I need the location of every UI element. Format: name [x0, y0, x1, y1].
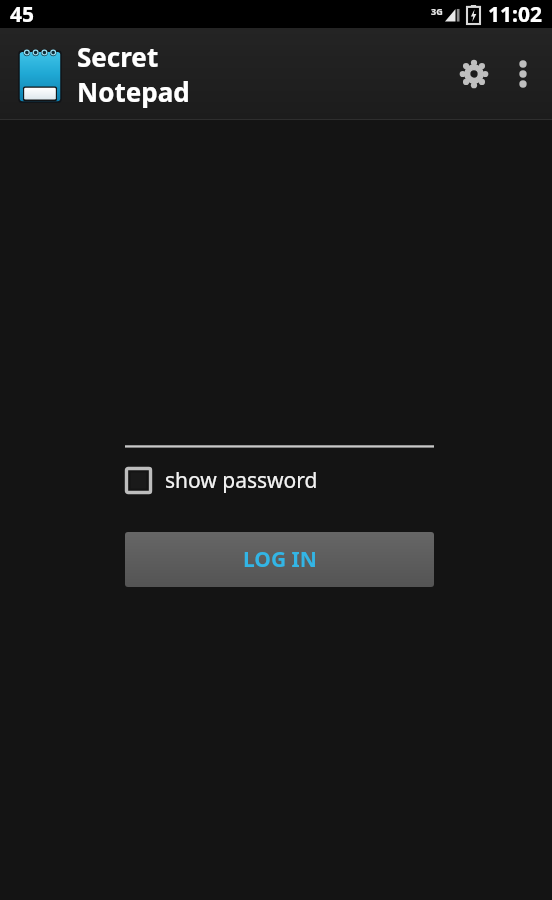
staticText: 45	[10, 0, 35, 28]
staticText: 3G	[431, 5, 443, 17]
staticText: LOG IN	[243, 545, 317, 574]
button[interactable]: show password	[125, 466, 318, 495]
button[interactable]: LOG IN	[125, 532, 434, 587]
staticText: Secret Notepad	[77, 39, 262, 109]
button[interactable]: More options	[504, 48, 542, 100]
staticText: show password	[165, 466, 318, 495]
button[interactable]: Settings	[448, 48, 500, 100]
staticText: 11:02	[488, 0, 542, 28]
